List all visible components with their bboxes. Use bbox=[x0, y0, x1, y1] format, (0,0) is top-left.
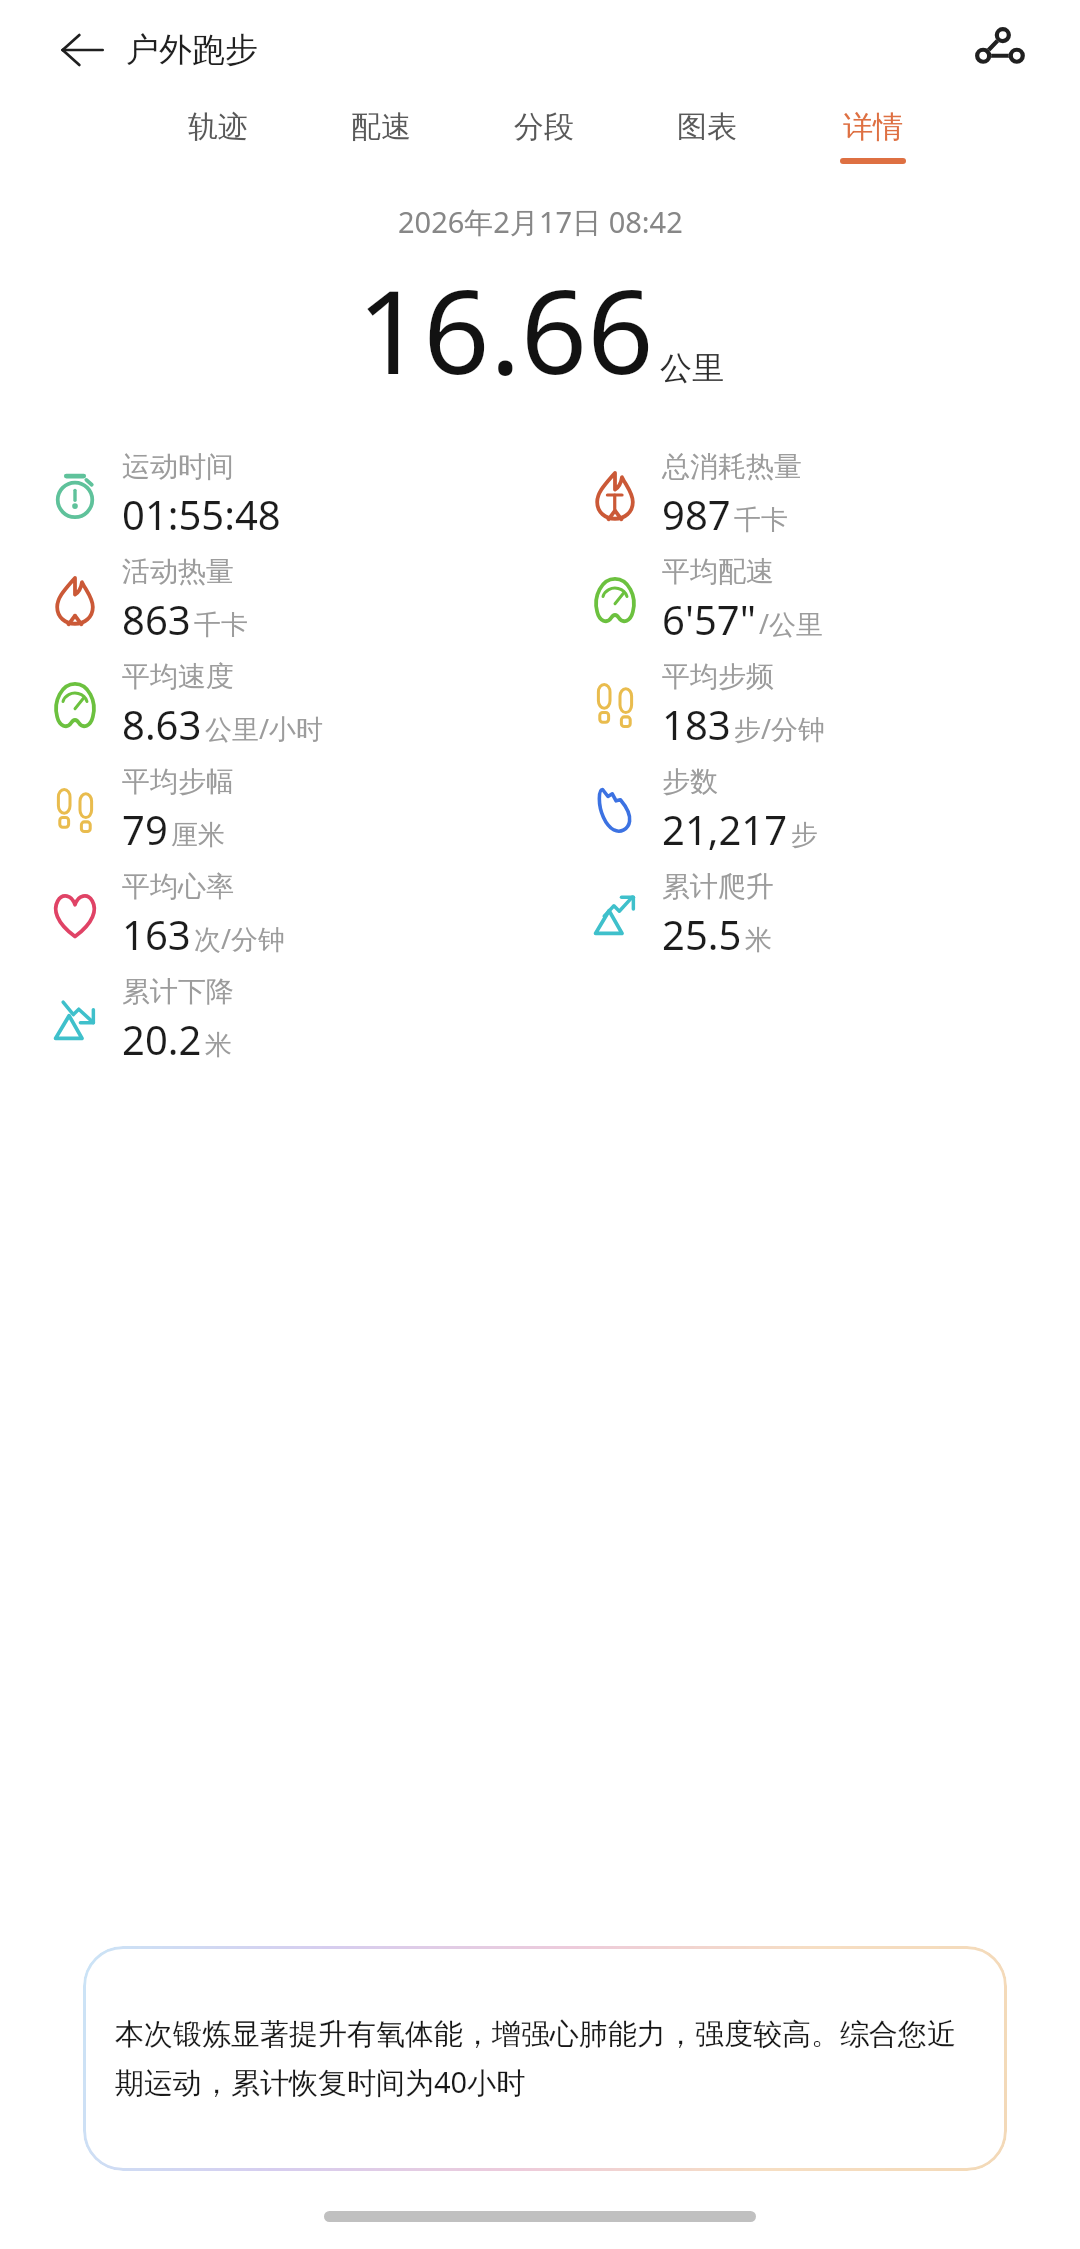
staticText: 次/分钟 bbox=[194, 920, 286, 957]
staticText: 户外跑步 bbox=[126, 29, 258, 71]
staticText: 步 bbox=[791, 818, 818, 852]
staticText: 25.5 bbox=[662, 907, 742, 961]
button[interactable]: 配速 bbox=[345, 100, 417, 172]
button[interactable]: 分段 bbox=[508, 100, 580, 172]
button[interactable]: 总消耗热量 bbox=[540, 442, 1080, 547]
staticText: 2026年2月17日 08:42 bbox=[398, 202, 683, 242]
staticText: 8.63 bbox=[122, 697, 202, 751]
button[interactable]: 平均配速 bbox=[540, 547, 1080, 652]
staticText: 20.2 bbox=[122, 1012, 202, 1066]
staticText: 千卡 bbox=[734, 503, 788, 537]
staticText: 01:55:48 bbox=[122, 487, 281, 541]
button[interactable]: 平均心率 bbox=[0, 862, 540, 967]
button[interactable]: 平均步频 bbox=[540, 652, 1080, 757]
button[interactable]: Back bbox=[50, 18, 114, 82]
staticText: 公里/小时 bbox=[205, 710, 324, 747]
staticText: 平均配速 bbox=[662, 554, 774, 589]
staticText: 步/分钟 bbox=[734, 710, 826, 747]
staticText: 总消耗热量 bbox=[662, 449, 802, 484]
staticText: 平均步频 bbox=[662, 659, 774, 694]
staticText: 183 bbox=[662, 697, 731, 751]
staticText: 运动时间 bbox=[122, 449, 234, 484]
staticText: 21,217 bbox=[662, 802, 788, 856]
staticText: 公里 bbox=[660, 348, 724, 388]
button[interactable]: Share bbox=[964, 15, 1034, 85]
staticText: 轨迹 bbox=[188, 108, 248, 146]
button[interactable]: 图表 bbox=[671, 100, 743, 172]
staticText: 987 bbox=[662, 487, 731, 541]
staticText: /公里 bbox=[759, 605, 824, 642]
staticText: 平均心率 bbox=[122, 869, 234, 904]
staticText: 厘米 bbox=[171, 818, 225, 852]
staticText: 米 bbox=[205, 1028, 232, 1062]
staticText: 平均速度 bbox=[122, 659, 234, 694]
staticText: 步数 bbox=[662, 764, 718, 799]
button[interactable]: 运动时间 bbox=[0, 442, 540, 547]
button[interactable]: 轨迹 bbox=[182, 100, 254, 172]
staticText: 16.66 bbox=[357, 250, 654, 408]
staticText: 863 bbox=[122, 592, 191, 646]
staticText: 米 bbox=[745, 923, 772, 957]
staticText: 本次锻炼显著提升有氧体能，增强心肺能力，强度较高。综合您近期运动，累计恢复时间为… bbox=[115, 2016, 975, 2101]
staticText: 累计爬升 bbox=[662, 869, 774, 904]
staticText: 配速 bbox=[351, 108, 411, 146]
button[interactable]: 步数 bbox=[540, 757, 1080, 862]
button[interactable]: 活动热量 bbox=[0, 547, 540, 652]
button[interactable]: 累计下降 bbox=[0, 967, 540, 1072]
button[interactable]: 详情 bbox=[834, 100, 912, 172]
staticText: 详情 bbox=[843, 108, 903, 146]
button[interactable]: 累计爬升 bbox=[540, 862, 1080, 967]
staticText: 累计下降 bbox=[122, 974, 234, 1009]
button[interactable]: 平均步幅 bbox=[0, 757, 540, 862]
staticText: 6'57" bbox=[662, 592, 756, 646]
staticText: 79 bbox=[122, 802, 168, 856]
staticText: 平均步幅 bbox=[122, 764, 234, 799]
staticText: 163 bbox=[122, 907, 191, 961]
staticText: 活动热量 bbox=[122, 554, 234, 589]
button[interactable]: 本次锻炼显著提升有氧体能，增强心肺能力，强度较高。综合您近期运动，累计恢复时间为… bbox=[83, 1946, 1007, 2171]
staticText: 图表 bbox=[677, 108, 737, 146]
staticText: 千卡 bbox=[194, 608, 248, 642]
button[interactable]: 平均速度 bbox=[0, 652, 540, 757]
staticText: 分段 bbox=[514, 108, 574, 146]
